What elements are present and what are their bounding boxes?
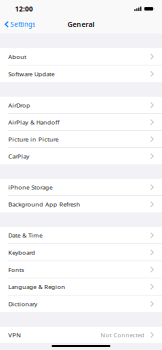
button[interactable]: iPhone Storage [0, 179, 162, 195]
button[interactable]: Background App Refresh [0, 196, 162, 212]
staticText: Fonts [8, 265, 24, 274]
staticText: Background App Refresh [8, 200, 80, 208]
staticText: General [67, 19, 94, 29]
button[interactable]: CarPlay [0, 148, 162, 164]
staticText: Not Connected [101, 331, 145, 339]
staticText: 12:00 [15, 4, 33, 13]
button[interactable]: Fonts [0, 261, 162, 278]
staticText: AirPlay & Handoff [8, 118, 59, 126]
staticText: Software Update [8, 70, 54, 78]
button[interactable]: Picture in Picture [0, 131, 162, 147]
staticText: VPN [8, 331, 21, 339]
staticText: iPhone Storage [8, 183, 52, 191]
staticText: Dictionary [8, 300, 37, 308]
button[interactable]: VPN [0, 327, 162, 343]
staticText: Date & Time [8, 231, 42, 239]
button[interactable]: Date & Time [0, 227, 162, 243]
button[interactable]: Language & Region [0, 278, 162, 295]
staticText: Settings [10, 20, 35, 29]
staticText: CarPlay [8, 152, 29, 160]
staticText: AirDrop [8, 101, 30, 109]
button[interactable]: About [0, 48, 162, 65]
staticText: Keyboard [8, 248, 35, 256]
button[interactable]: Software Update [0, 66, 162, 82]
staticText: About [8, 52, 26, 61]
button[interactable]: AirDrop [0, 97, 162, 113]
button[interactable]: Settings [0, 16, 38, 33]
button[interactable]: Keyboard [0, 244, 162, 261]
staticText: Picture in Picture [8, 135, 58, 143]
button[interactable]: Dictionary [0, 296, 162, 312]
button[interactable]: AirPlay & Handoff [0, 114, 162, 130]
staticText: Language & Region [8, 283, 65, 291]
